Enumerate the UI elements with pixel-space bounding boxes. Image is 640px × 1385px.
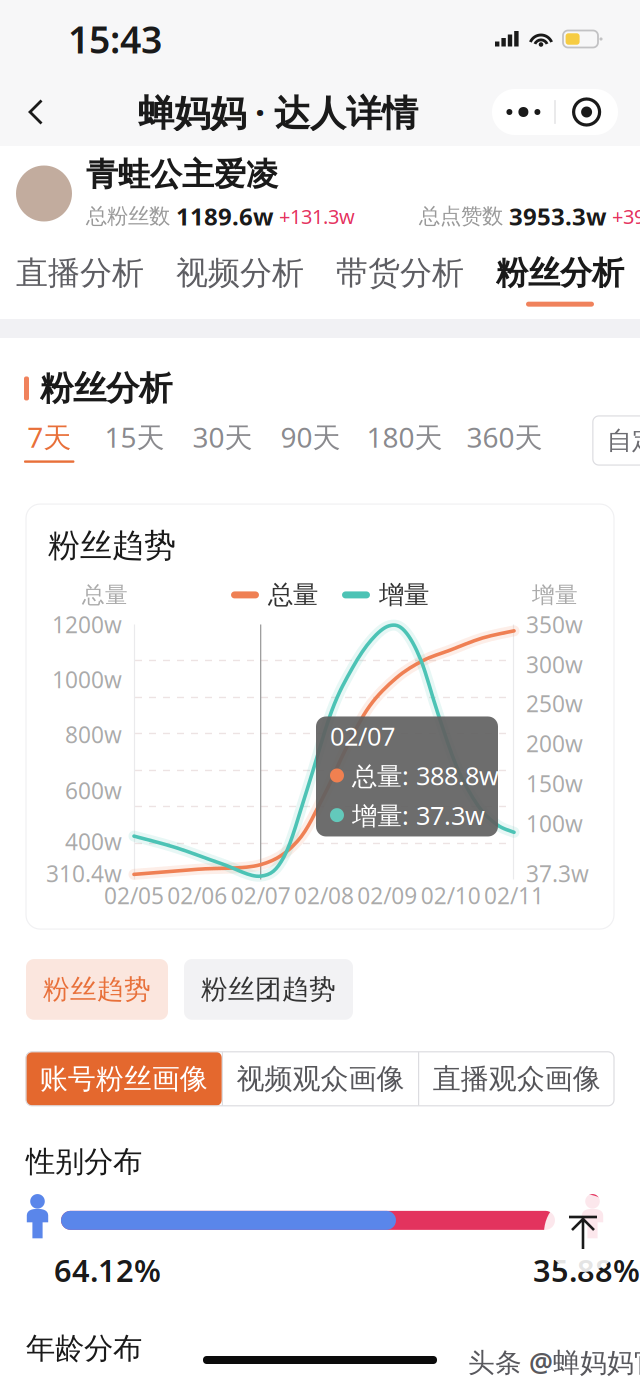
staticText: 250w bbox=[526, 688, 583, 718]
staticText: 02/07 bbox=[330, 719, 395, 753]
button[interactable]: 360天 bbox=[466, 418, 542, 463]
button[interactable]: 直播观众画像 bbox=[419, 1052, 614, 1106]
staticText: 02/10 bbox=[421, 880, 481, 910]
staticText: 02/09 bbox=[357, 880, 417, 910]
button[interactable]: 返回 bbox=[8, 83, 64, 141]
button[interactable]: 30天 bbox=[192, 418, 252, 463]
staticText: 总量 bbox=[82, 581, 128, 609]
staticText: 1200w bbox=[52, 609, 122, 639]
staticText: 02/06 bbox=[167, 880, 227, 910]
button[interactable]: 180天 bbox=[366, 418, 442, 463]
staticText: 300w bbox=[526, 649, 583, 679]
staticText: 青蛙公主爱凌 bbox=[86, 155, 278, 194]
button[interactable]: 15天 bbox=[104, 418, 164, 463]
staticText: 150w bbox=[526, 768, 583, 798]
staticText: 64.12% bbox=[54, 1250, 161, 1290]
staticText: 02/07 bbox=[231, 880, 291, 910]
staticText: 35.88% bbox=[533, 1250, 640, 1290]
staticText: +391.3w bbox=[607, 203, 640, 229]
button[interactable]: 7天 bbox=[24, 418, 74, 463]
staticText: 15天 bbox=[104, 418, 164, 455]
staticText: 直播观众画像 bbox=[433, 1062, 601, 1096]
staticText: 自定义 bbox=[607, 425, 640, 456]
staticText: 400w bbox=[65, 826, 122, 856]
staticText: 总量 bbox=[268, 579, 318, 610]
staticText: 总点赞数 bbox=[419, 203, 509, 229]
button[interactable]: 回到顶部 bbox=[544, 1194, 622, 1272]
staticText: 总粉丝数 bbox=[86, 203, 176, 229]
button[interactable]: 带货分析 bbox=[320, 241, 480, 319]
staticText: 账号粉丝画像 bbox=[40, 1062, 208, 1096]
staticText: 带货分析 bbox=[336, 253, 464, 293]
staticText: 粉丝分析 bbox=[496, 253, 624, 293]
staticText: 600w bbox=[65, 775, 122, 805]
staticText: 310.4w bbox=[46, 858, 122, 888]
staticText: 90天 bbox=[280, 418, 340, 455]
staticText: 37.3w bbox=[526, 858, 589, 888]
staticText: 800w bbox=[65, 719, 122, 749]
staticText: 视频观众画像 bbox=[236, 1062, 404, 1096]
button[interactable]: 粉丝趋势 bbox=[26, 959, 168, 1020]
staticText: 200w bbox=[526, 728, 583, 758]
button[interactable]: 粉丝团趋势 bbox=[184, 959, 353, 1020]
staticText: 粉丝趋势 bbox=[48, 526, 176, 565]
button[interactable]: 更多 bbox=[492, 89, 554, 135]
staticText: 增量 bbox=[532, 581, 578, 609]
staticText: 粉丝趋势 bbox=[43, 973, 151, 1006]
staticText: 总量: 388.8w bbox=[352, 759, 499, 792]
staticText: 年龄分布 bbox=[26, 1331, 142, 1367]
staticText: 粉丝分析 bbox=[40, 368, 172, 409]
staticText: 7天 bbox=[27, 418, 71, 455]
staticText: 粉丝团趋势 bbox=[201, 973, 336, 1006]
button[interactable]: 粉丝分析 bbox=[480, 241, 640, 319]
button[interactable]: 自定义 bbox=[593, 416, 640, 465]
button[interactable]: 视频分析 bbox=[160, 241, 320, 319]
button[interactable]: 关闭小程序 bbox=[556, 89, 618, 135]
staticText: +131.3w bbox=[274, 203, 355, 229]
button[interactable]: 90天 bbox=[280, 418, 340, 463]
staticText: 180天 bbox=[366, 418, 442, 455]
staticText: 15:43 bbox=[68, 14, 162, 64]
staticText: 直播分析 bbox=[16, 253, 144, 293]
button[interactable]: 账号粉丝画像 bbox=[26, 1052, 222, 1106]
staticText: 02/08 bbox=[294, 880, 354, 910]
button[interactable]: 视频观众画像 bbox=[223, 1052, 418, 1106]
staticText: 蝉妈妈 · 达人详情 bbox=[138, 88, 418, 136]
staticText: 30天 bbox=[192, 418, 252, 455]
staticText: 增量 bbox=[379, 579, 429, 610]
staticText: 3953.3w bbox=[509, 200, 607, 232]
staticText: 02/11 bbox=[484, 880, 544, 910]
staticText: 头条 @蝉妈妈官方 bbox=[468, 1344, 640, 1379]
button[interactable]: 直播分析 bbox=[0, 241, 160, 319]
staticText: 1000w bbox=[52, 664, 122, 694]
staticText: 性别分布 bbox=[26, 1144, 142, 1180]
staticText: 视频分析 bbox=[176, 253, 304, 293]
staticText: 360天 bbox=[466, 418, 542, 455]
staticText: 100w bbox=[526, 808, 583, 838]
staticText: 1189.6w bbox=[176, 200, 274, 232]
staticText: 02/05 bbox=[104, 880, 164, 910]
staticText: 增量: 37.3w bbox=[352, 798, 485, 832]
staticText: 350w bbox=[526, 609, 583, 639]
